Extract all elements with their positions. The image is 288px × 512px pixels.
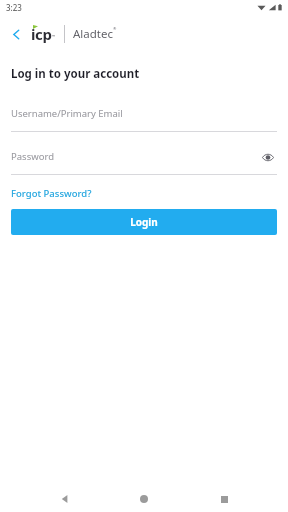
staticText: Log in to your account xyxy=(11,66,140,82)
staticText: Aladtec xyxy=(73,26,113,42)
button[interactable]: Recent apps xyxy=(209,486,239,512)
staticText: 3:23 xyxy=(6,2,22,13)
button[interactable]: Back xyxy=(50,486,80,512)
button[interactable]: Username/Primary Email xyxy=(0,103,288,132)
staticText: Username/Primary Email xyxy=(11,107,123,120)
button[interactable]: Password xyxy=(0,146,288,175)
staticText: Login xyxy=(130,215,158,229)
staticText: Password xyxy=(11,150,54,163)
staticText: Forgot Password? xyxy=(11,187,92,200)
button[interactable]: Forgot Password? xyxy=(11,186,92,201)
button[interactable]: Back xyxy=(6,24,26,44)
staticText: icp xyxy=(31,24,52,44)
button[interactable]: Login xyxy=(11,209,277,235)
staticText: ® xyxy=(113,26,117,31)
button[interactable]: Home xyxy=(129,486,159,512)
button[interactable]: Show password xyxy=(259,148,277,166)
staticText: ™ xyxy=(52,34,56,39)
